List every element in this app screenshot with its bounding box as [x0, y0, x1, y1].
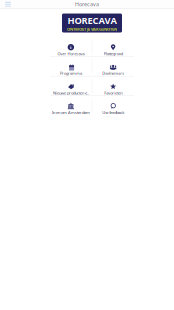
button[interactable]: Uw feedback	[92, 96, 134, 116]
staticText: Uw feedback	[102, 110, 124, 115]
staticText: Nieuwe producten e..	[53, 90, 89, 95]
button[interactable]: Over Horecava	[50, 37, 92, 57]
staticText: Favorieten	[104, 90, 122, 95]
staticText: Horecava	[75, 1, 99, 8]
button[interactable]: In en om Amsterdam	[50, 96, 92, 116]
button[interactable]: Programma	[50, 57, 92, 76]
staticText: HORECAVA	[67, 14, 116, 26]
button[interactable]: Menu	[2, 0, 14, 8]
staticText: In en om Amsterdam	[52, 110, 90, 115]
staticText: Deelnemers	[102, 71, 124, 76]
button[interactable]: Plattegrond	[92, 37, 134, 57]
staticText: Plattegrond	[104, 51, 123, 56]
button[interactable]: Favorieten	[92, 76, 134, 96]
staticText: Programma	[60, 71, 82, 76]
button[interactable]: Deelnemers	[92, 57, 134, 76]
button[interactable]: Nieuwe producten e..	[50, 76, 92, 96]
staticText: ONTMOET JE VAKGENOTEN	[67, 26, 117, 32]
staticText: Over Horecava	[57, 51, 84, 56]
